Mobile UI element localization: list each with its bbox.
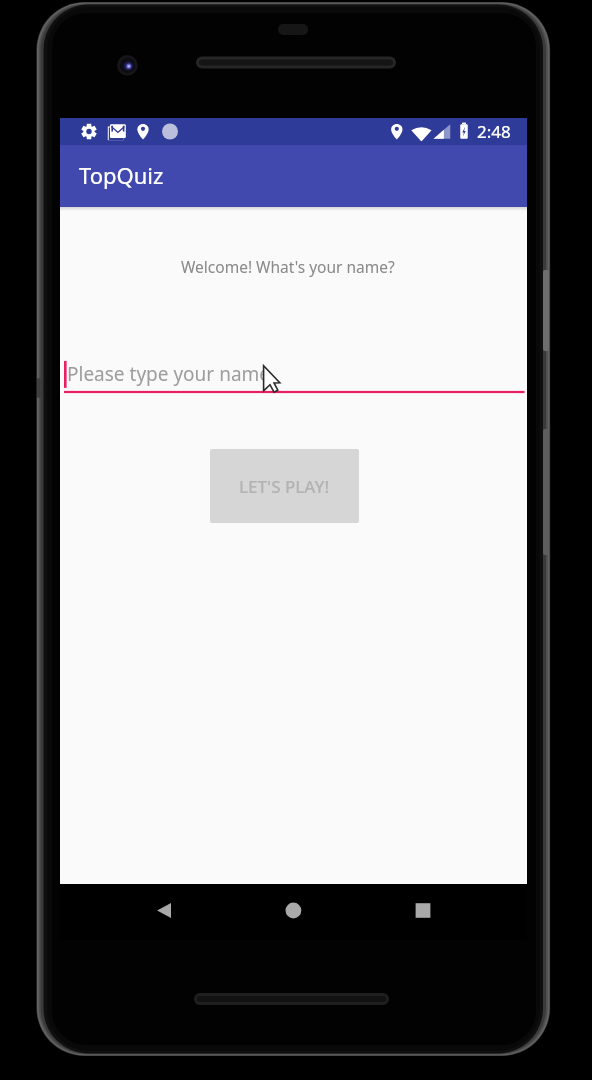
button[interactable]: Recent apps <box>400 889 446 935</box>
staticText: Welcome! What's your name? <box>181 256 395 277</box>
button[interactable]: LET'S PLAY! <box>210 449 359 523</box>
staticText: 2:48 <box>477 120 511 143</box>
staticText: TopQuiz <box>79 160 164 190</box>
staticText: Please type your name <box>67 361 271 387</box>
staticText: LET'S PLAY! <box>239 475 330 498</box>
button[interactable]: Back <box>141 889 187 935</box>
button[interactable]: Home <box>270 889 316 935</box>
button[interactable]: Name input field <box>64 354 531 394</box>
